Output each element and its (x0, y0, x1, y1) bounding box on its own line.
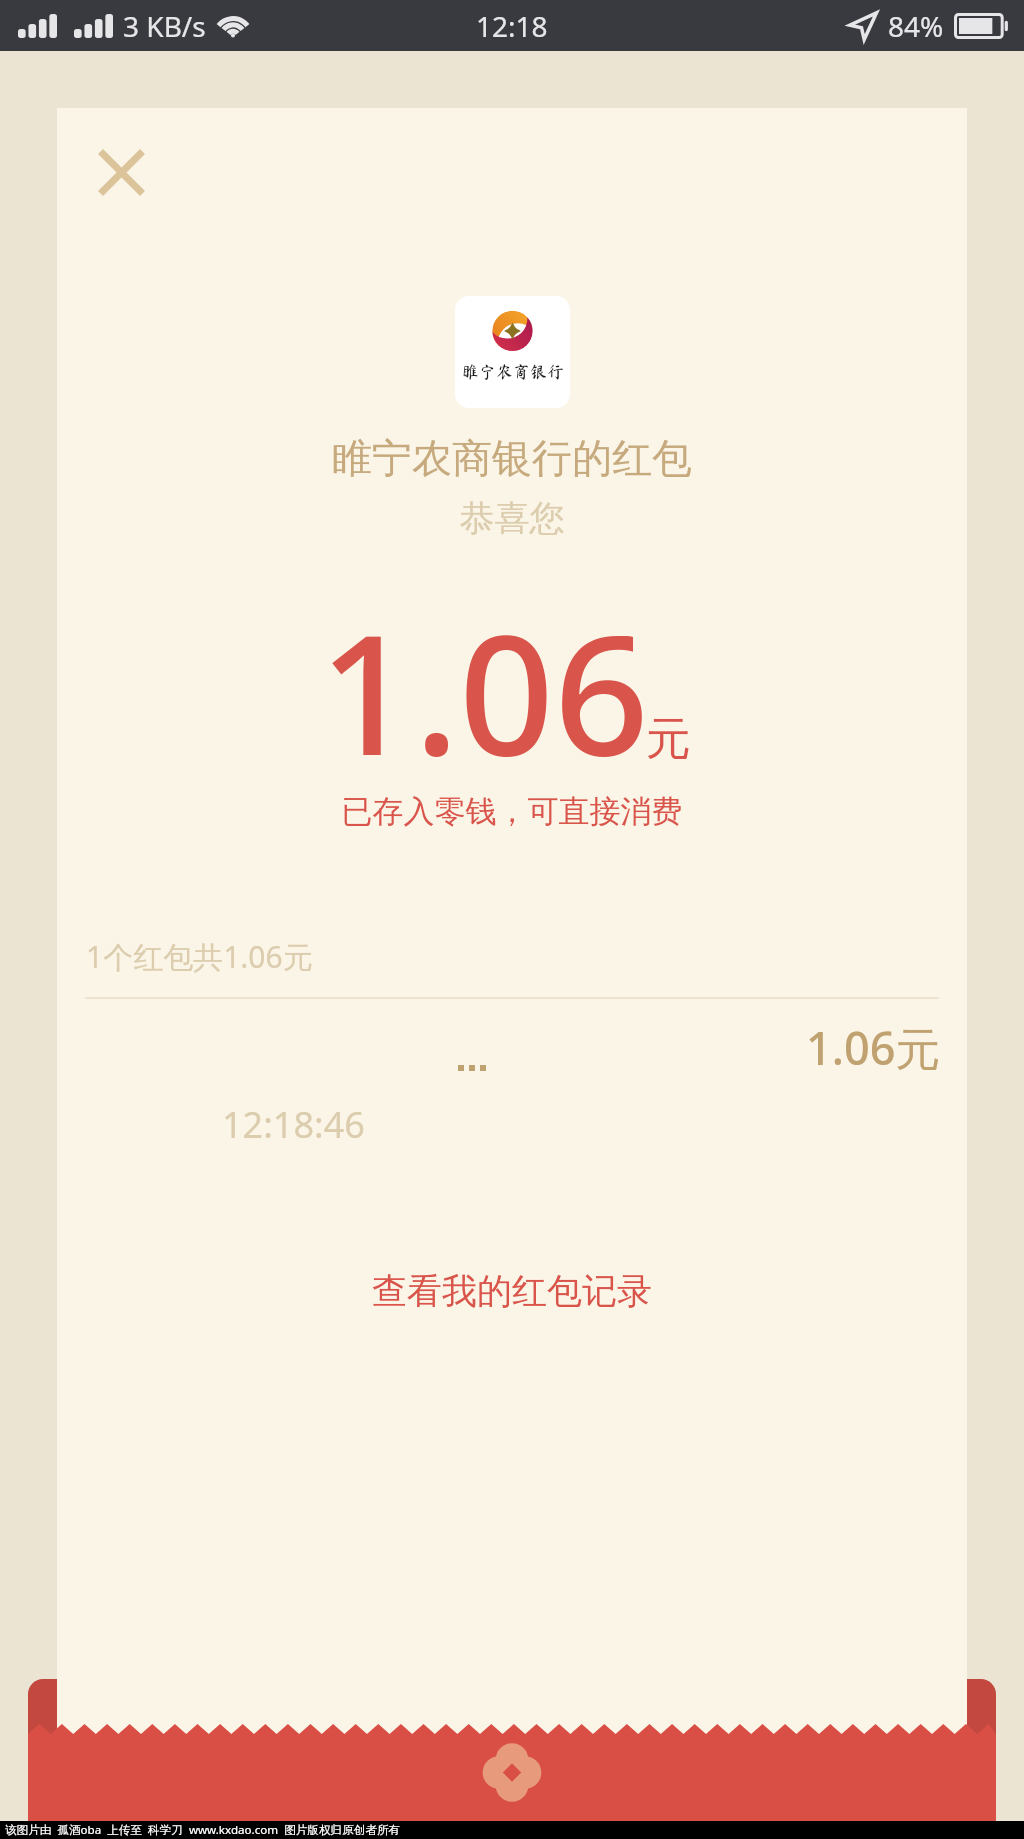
staticText: 3 KB/s (123, 7, 206, 45)
staticText: 恭喜您 (0, 496, 1024, 540)
button[interactable]: 睢宁农商银行 (455, 296, 570, 408)
other: Wi-Fi (216, 13, 250, 39)
staticText: 12:18:46 (222, 1100, 365, 1149)
button[interactable]: Receiver (85, 1010, 939, 1150)
other: Location (848, 11, 878, 41)
other: Receiver (458, 1065, 486, 1071)
staticText: 已存入零钱，可直接消费 (0, 792, 1024, 831)
staticText: 12:18 (476, 7, 548, 45)
button[interactable]: 查看我的红包记录 (352, 1261, 672, 1321)
staticText: 睢宁农商银行的红包 (0, 433, 1024, 483)
staticText: 1个红包共1.06元 (86, 936, 313, 977)
staticText: 睢宁农商银行 (462, 363, 564, 380)
staticText: 1.06元 (806, 1017, 941, 1078)
button[interactable]: Close (87, 138, 155, 206)
staticText: 元 (646, 711, 691, 768)
other: Signal strength (74, 14, 113, 38)
staticText: 该图片由 孤酒oba 上传至 科学刀 www.kxdao.com 图片版权归原创… (5, 1822, 401, 1838)
staticText: 84% (888, 7, 944, 45)
staticText: 1.06 (319, 578, 650, 804)
other: Battery 84 percent (954, 13, 1008, 39)
other: Signal strength (18, 14, 57, 38)
staticText: 查看我的红包记录 (372, 1269, 652, 1313)
